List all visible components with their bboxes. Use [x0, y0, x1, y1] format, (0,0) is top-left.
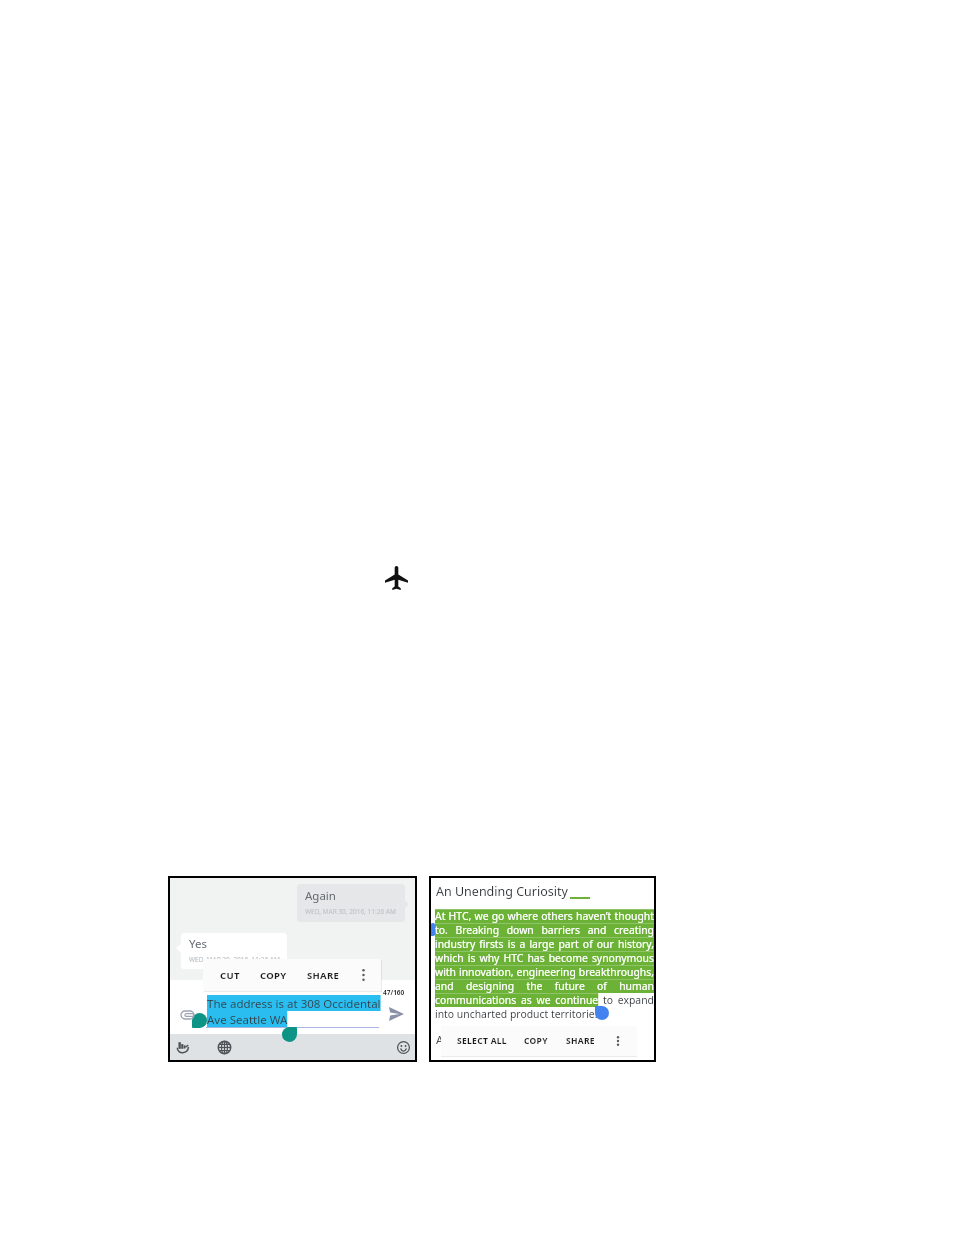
button[interactable]: Again	[297, 884, 405, 922]
staticText: SELECT ALL	[457, 1035, 507, 1047]
button[interactable]: Send	[386, 1005, 406, 1023]
button[interactable]: COPY	[516, 1026, 556, 1056]
button[interactable]: Attach file	[180, 1009, 195, 1021]
staticText: A	[436, 1032, 444, 1048]
button[interactable]: SHARE	[558, 1026, 603, 1056]
staticText: SHARE	[566, 1035, 595, 1047]
button[interactable]: More options	[609, 1026, 627, 1056]
staticText: The address is at 308 Occidental Ave Sea…	[207, 995, 381, 1027]
staticText: SHARE	[307, 969, 340, 982]
staticText: An Unending Curiosity	[436, 883, 568, 900]
staticText: At HTC, we go where others haven’t thoug…	[435, 909, 654, 1021]
staticText: Yes	[189, 936, 207, 952]
button[interactable]: Change language	[218, 1041, 231, 1054]
staticText: CUT	[220, 969, 240, 982]
button[interactable]: SHARE	[299, 959, 348, 991]
staticText: COPY	[260, 969, 287, 982]
staticText: WED, MAR 30, 2016, 11:26 AM	[189, 955, 280, 964]
button[interactable]: Emoji	[397, 1041, 410, 1054]
staticText: COPY	[524, 1035, 548, 1047]
staticText: WED, MAR 30, 2016, 11:26 AM	[305, 907, 396, 916]
button[interactable]: SELECT ALL	[449, 1026, 515, 1056]
button[interactable]: More options	[354, 959, 372, 991]
staticText: 47/160	[383, 988, 405, 997]
button[interactable]: Yes	[181, 933, 287, 969]
button[interactable]: Handwriting input	[175, 1039, 191, 1055]
staticText: Again	[305, 888, 336, 904]
button[interactable]: COPY	[252, 959, 295, 991]
button[interactable]: CUT	[212, 959, 248, 991]
